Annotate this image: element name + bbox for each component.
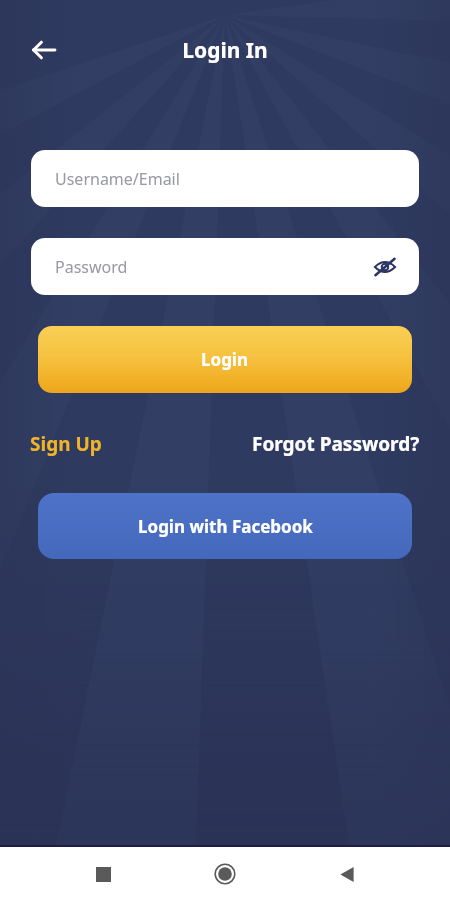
staticText: Login In	[182, 36, 268, 65]
button[interactable]: Forgot Password?	[250, 425, 422, 463]
button[interactable]: Sign Up	[28, 425, 104, 463]
button[interactable]: Home	[203, 852, 247, 896]
button[interactable]: Login with Facebook	[38, 493, 412, 559]
button[interactable]: Show password	[367, 249, 403, 285]
staticText: Login	[201, 348, 249, 371]
button[interactable]: Login	[38, 326, 412, 393]
button[interactable]: Back	[325, 852, 369, 896]
staticText: Sign Up	[30, 431, 102, 457]
staticText: Forgot Password?	[252, 431, 420, 457]
staticText: Login with Facebook	[138, 515, 313, 538]
button[interactable]: Recents	[81, 852, 125, 896]
button[interactable]: Password	[31, 238, 419, 295]
staticText: Password	[55, 256, 128, 278]
button[interactable]: Back	[22, 28, 66, 72]
staticText: Username/Email	[55, 168, 180, 190]
button[interactable]: Username/Email	[31, 150, 419, 207]
